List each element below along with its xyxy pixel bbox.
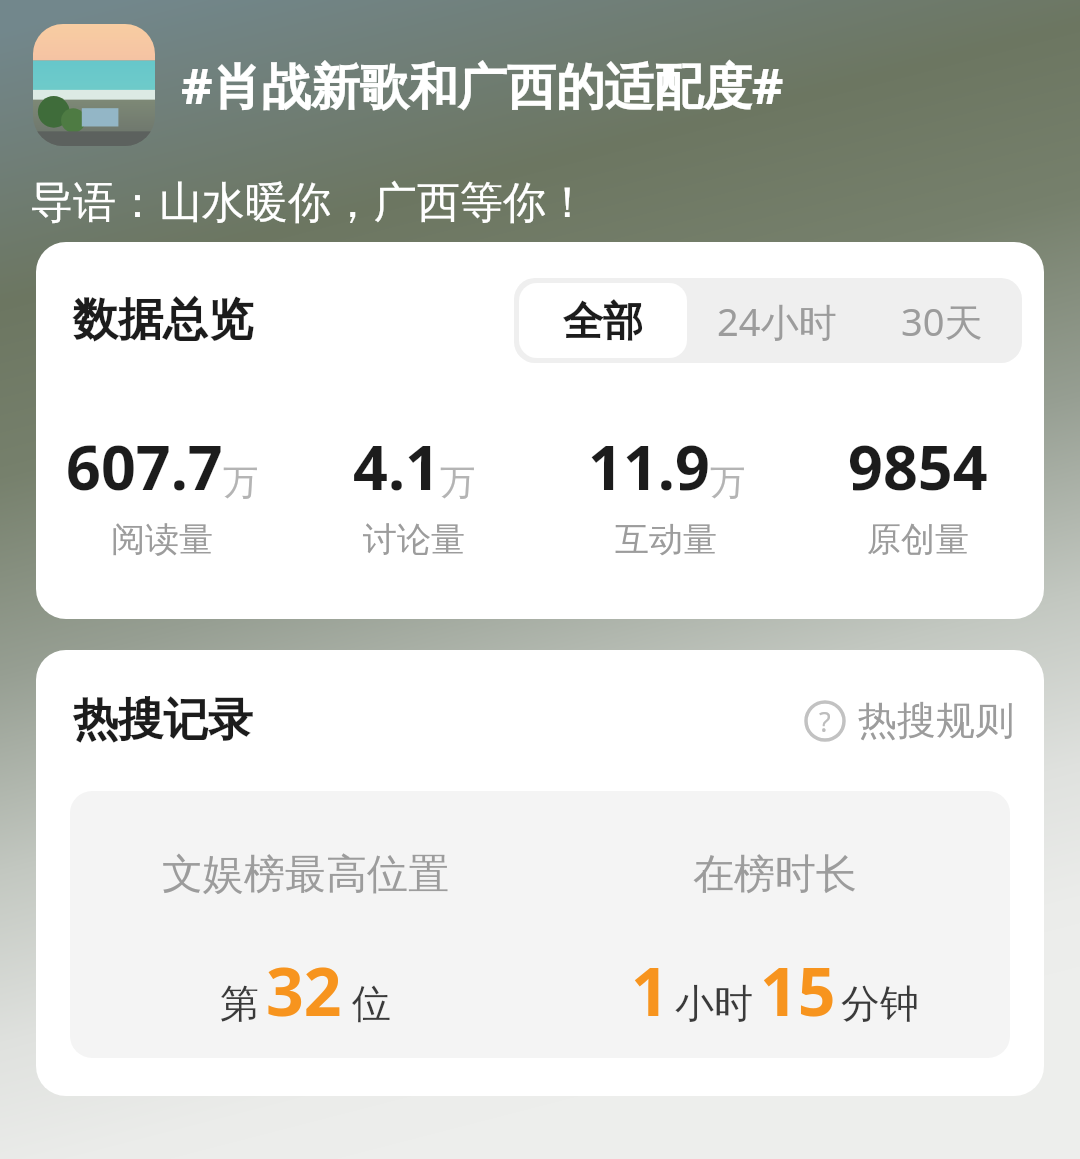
button[interactable]: 9854 [792, 425, 1044, 561]
staticText: 数据总览 [73, 292, 253, 349]
button[interactable]: 607.7 [36, 425, 288, 561]
staticText: 讨论量 [363, 518, 465, 561]
button[interactable]: 30天 [862, 283, 1022, 358]
button[interactable]: 全部 [519, 283, 687, 358]
staticText: 文娱榜最高位置 [162, 849, 449, 901]
staticText: 万 [223, 460, 258, 504]
staticText: 位 [352, 979, 391, 1028]
staticText: 导语：山水暖你，广西等你！ [30, 176, 589, 230]
staticText: 热搜规则 [858, 696, 1014, 745]
staticText: 9854 [848, 425, 988, 508]
staticText: 原创量 [867, 518, 969, 561]
staticText: 阅读量 [111, 518, 213, 561]
button[interactable]: 11.9 [540, 425, 792, 561]
staticText: ? [819, 703, 831, 740]
staticText: 15 [760, 945, 836, 1035]
staticText: 小时 [675, 979, 753, 1028]
staticText: 万 [710, 460, 745, 504]
staticText: 全部 [563, 296, 643, 346]
button[interactable]: Topic cover image [33, 24, 155, 146]
staticText: 1 [631, 945, 669, 1035]
staticText: 热搜记录 [73, 692, 253, 749]
staticText: 互动量 [615, 518, 717, 561]
staticText: 万 [440, 460, 475, 504]
staticText: 分钟 [841, 979, 919, 1028]
staticText: 4.1 [353, 425, 440, 508]
staticText: #肖战新歌和广西的适配度# [181, 52, 784, 119]
button[interactable]: 24小时 [692, 283, 862, 358]
staticText: 24小时 [717, 295, 837, 347]
button[interactable]: 文娱榜最高位置 [70, 791, 540, 1058]
staticText: 32 [266, 945, 342, 1035]
staticText: 11.9 [588, 425, 710, 508]
staticText: 第 [220, 979, 259, 1028]
staticText: 607.7 [66, 425, 223, 508]
staticText: 在榜时长 [693, 849, 857, 901]
staticText: 30天 [901, 295, 983, 347]
button[interactable]: 4.1 [288, 425, 540, 561]
button[interactable]: 在榜时长 [540, 791, 1010, 1058]
button[interactable]: 热搜规则 Hot search rules [804, 696, 1014, 745]
